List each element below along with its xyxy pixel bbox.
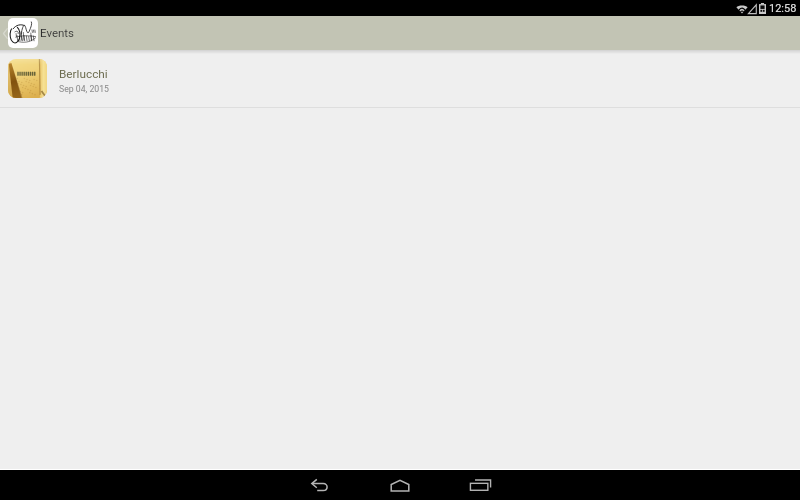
button[interactable]: Recent apps — [440, 470, 520, 500]
button[interactable]: Back — [280, 470, 360, 500]
button[interactable]: Home — [360, 470, 440, 500]
staticText: Sep 04, 2015 — [59, 84, 109, 94]
staticText: 12:58 — [769, 2, 797, 15]
button[interactable]: Berlucchi — [0, 50, 800, 108]
staticText: Berlucchi — [59, 67, 108, 81]
staticText: Events — [40, 26, 75, 39]
button[interactable]: Navigate up — [0, 16, 42, 50]
